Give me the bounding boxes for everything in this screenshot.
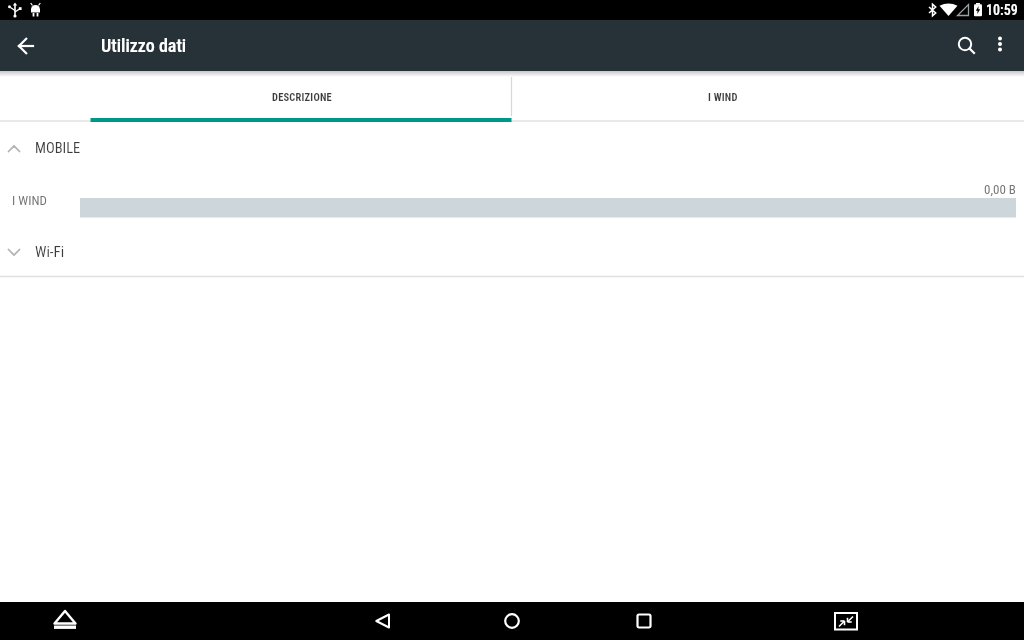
button[interactable] xyxy=(984,28,1016,60)
staticText: MOBILE xyxy=(35,140,81,157)
button[interactable] xyxy=(628,605,660,637)
button[interactable] xyxy=(10,30,42,62)
button[interactable]: DESCRIZIONE xyxy=(91,71,512,122)
button[interactable] xyxy=(49,605,81,637)
button[interactable] xyxy=(366,605,398,637)
staticText: I WIND xyxy=(12,193,47,208)
staticText: Utilizzo dati xyxy=(101,35,187,56)
staticText: DESCRIZIONE xyxy=(272,91,332,103)
staticText: 10:59 xyxy=(986,2,1018,18)
staticText: Wi-Fi xyxy=(35,243,65,261)
button[interactable] xyxy=(0,182,1024,224)
button[interactable]: I WIND xyxy=(512,71,934,122)
button[interactable] xyxy=(0,234,1024,276)
button[interactable] xyxy=(496,605,528,637)
button[interactable] xyxy=(948,28,984,64)
staticText: 0,00 B xyxy=(984,182,1016,197)
staticText: I WIND xyxy=(708,91,738,103)
button[interactable] xyxy=(830,605,862,637)
button[interactable] xyxy=(0,132,1024,174)
